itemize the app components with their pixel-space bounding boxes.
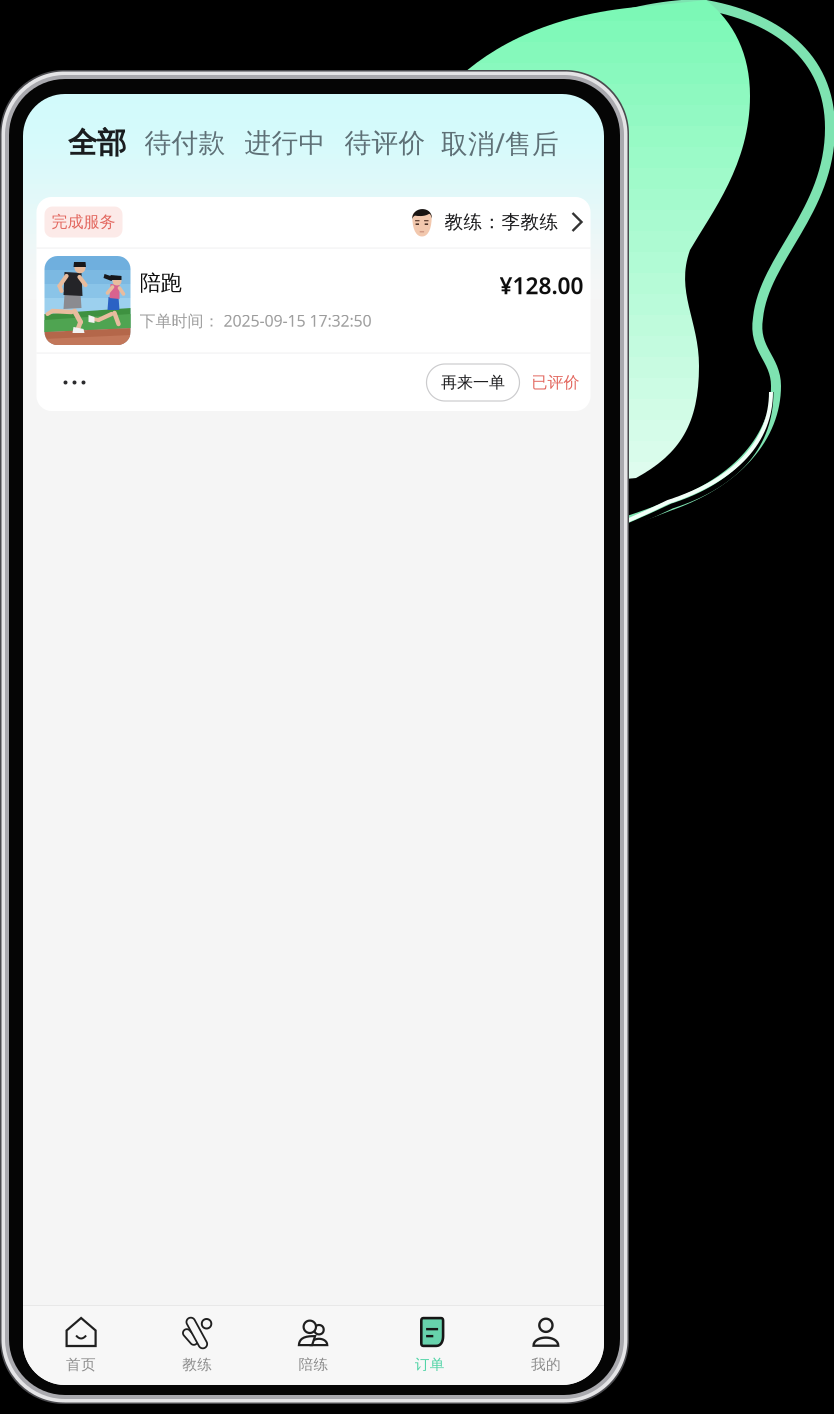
staticText: 首页 <box>66 1355 96 1373</box>
staticText: 再来一单 <box>441 373 505 392</box>
staticText: 教练：李教练 <box>444 210 558 233</box>
staticText: 教练 <box>182 1355 212 1373</box>
button[interactable]: 首页 <box>23 1305 139 1385</box>
staticText: 取消/售后 <box>441 125 559 161</box>
button[interactable]: 进行中 <box>243 115 327 171</box>
staticText: ¥128.00 <box>499 270 583 301</box>
staticText: 已评价 <box>531 373 579 392</box>
staticText: 完成服务 <box>51 212 115 232</box>
staticText: 下单时间： 2025-09-15 17:32:50 <box>139 310 371 331</box>
staticText: 待评价 <box>344 127 425 159</box>
button[interactable]: 订单 <box>372 1305 488 1385</box>
button[interactable]: 陪练 <box>255 1305 372 1385</box>
staticText: 待付款 <box>144 127 225 159</box>
button[interactable]: 教练：李教练 <box>411 202 584 242</box>
staticText: 我的 <box>531 1355 561 1373</box>
staticText: 订单 <box>415 1355 445 1373</box>
button[interactable]: 陪跑 <box>36 248 590 352</box>
button[interactable]: 待评价 <box>343 115 427 171</box>
button[interactable]: 教练 <box>139 1305 255 1385</box>
staticText: 陪跑 <box>139 270 181 296</box>
button[interactable]: 完成服务 <box>44 206 122 237</box>
button[interactable]: 待付款 <box>143 115 227 171</box>
staticText: 陪练 <box>298 1355 328 1373</box>
button[interactable]: 再来一单 <box>426 364 519 401</box>
button[interactable]: 已评价 <box>523 364 587 401</box>
button[interactable]: 全部 <box>67 115 127 171</box>
button[interactable]: 取消/售后 <box>439 115 561 171</box>
staticText: 进行中 <box>244 127 325 159</box>
button[interactable]: 更多 <box>50 354 98 410</box>
button[interactable]: 我的 <box>488 1305 604 1385</box>
staticText: 全部 <box>68 125 126 161</box>
